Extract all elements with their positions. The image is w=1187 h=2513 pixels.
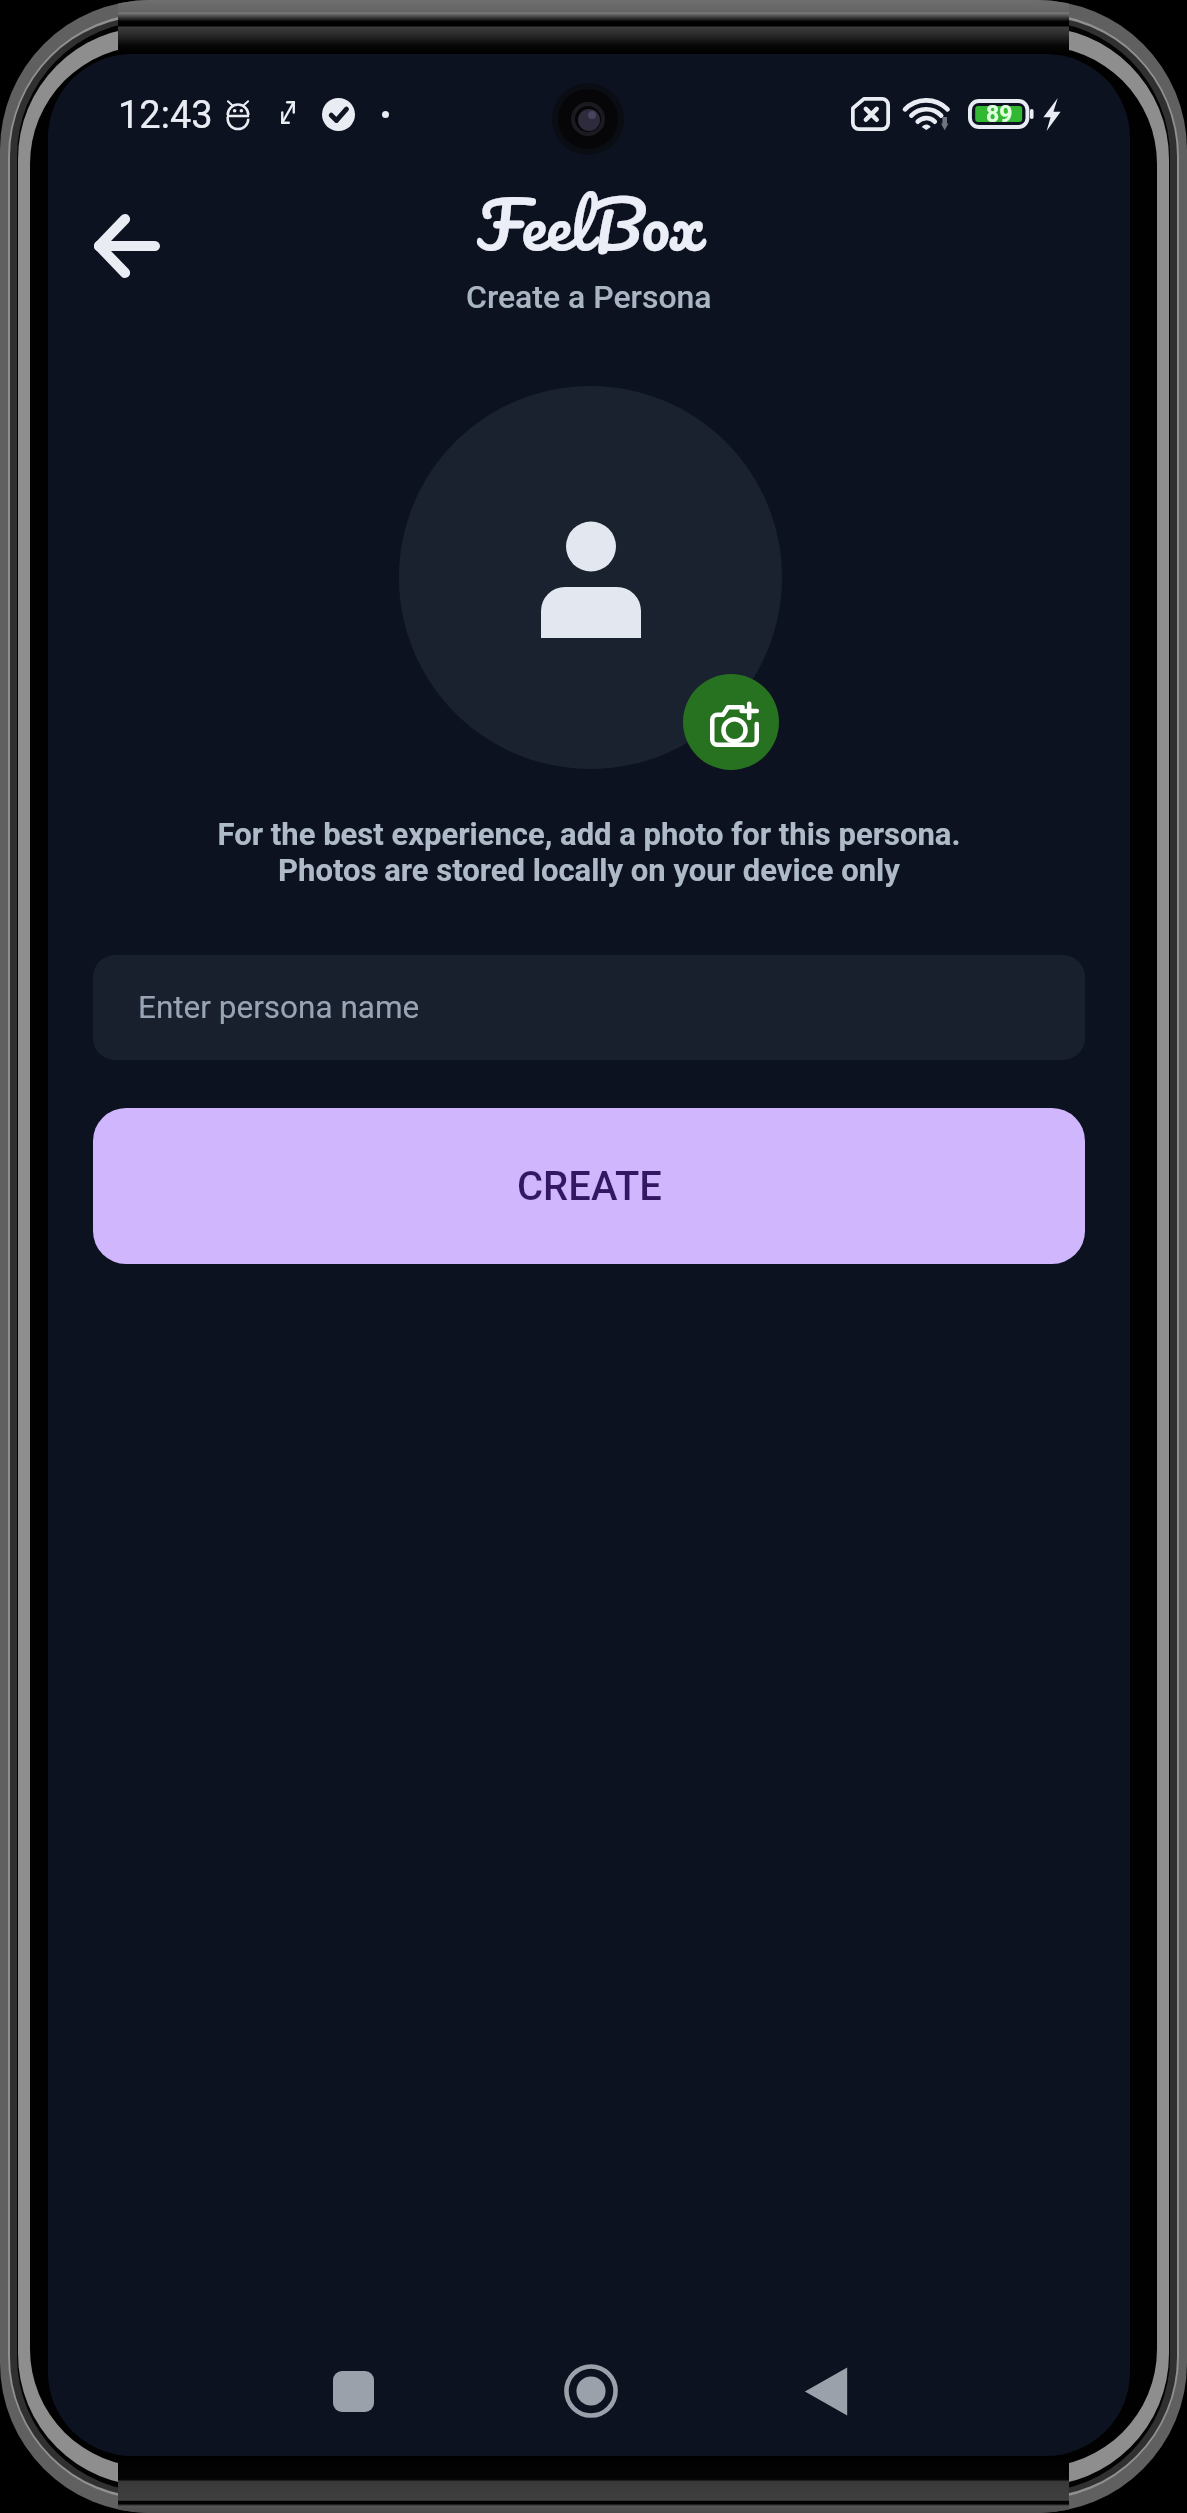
button[interactable]: Back — [72, 191, 182, 301]
staticText: For the best experience, add a photo for… — [48, 816, 1130, 889]
staticText: Create a Persona — [466, 278, 712, 316]
button[interactable]: Home — [541, 2341, 641, 2441]
staticText: FeelBox — [477, 169, 705, 280]
button[interactable]: Back — [776, 2341, 876, 2441]
staticText: CREATE — [517, 1163, 662, 1210]
staticText: 12:43 — [118, 93, 213, 138]
staticText: Enter persona name — [138, 989, 420, 1026]
button[interactable]: Add photo — [683, 674, 779, 770]
staticText: 89 — [986, 101, 1013, 128]
button[interactable]: Enter persona name — [93, 955, 1085, 1060]
button[interactable]: Recents — [303, 2341, 403, 2441]
button[interactable]: CREATE — [93, 1108, 1085, 1264]
